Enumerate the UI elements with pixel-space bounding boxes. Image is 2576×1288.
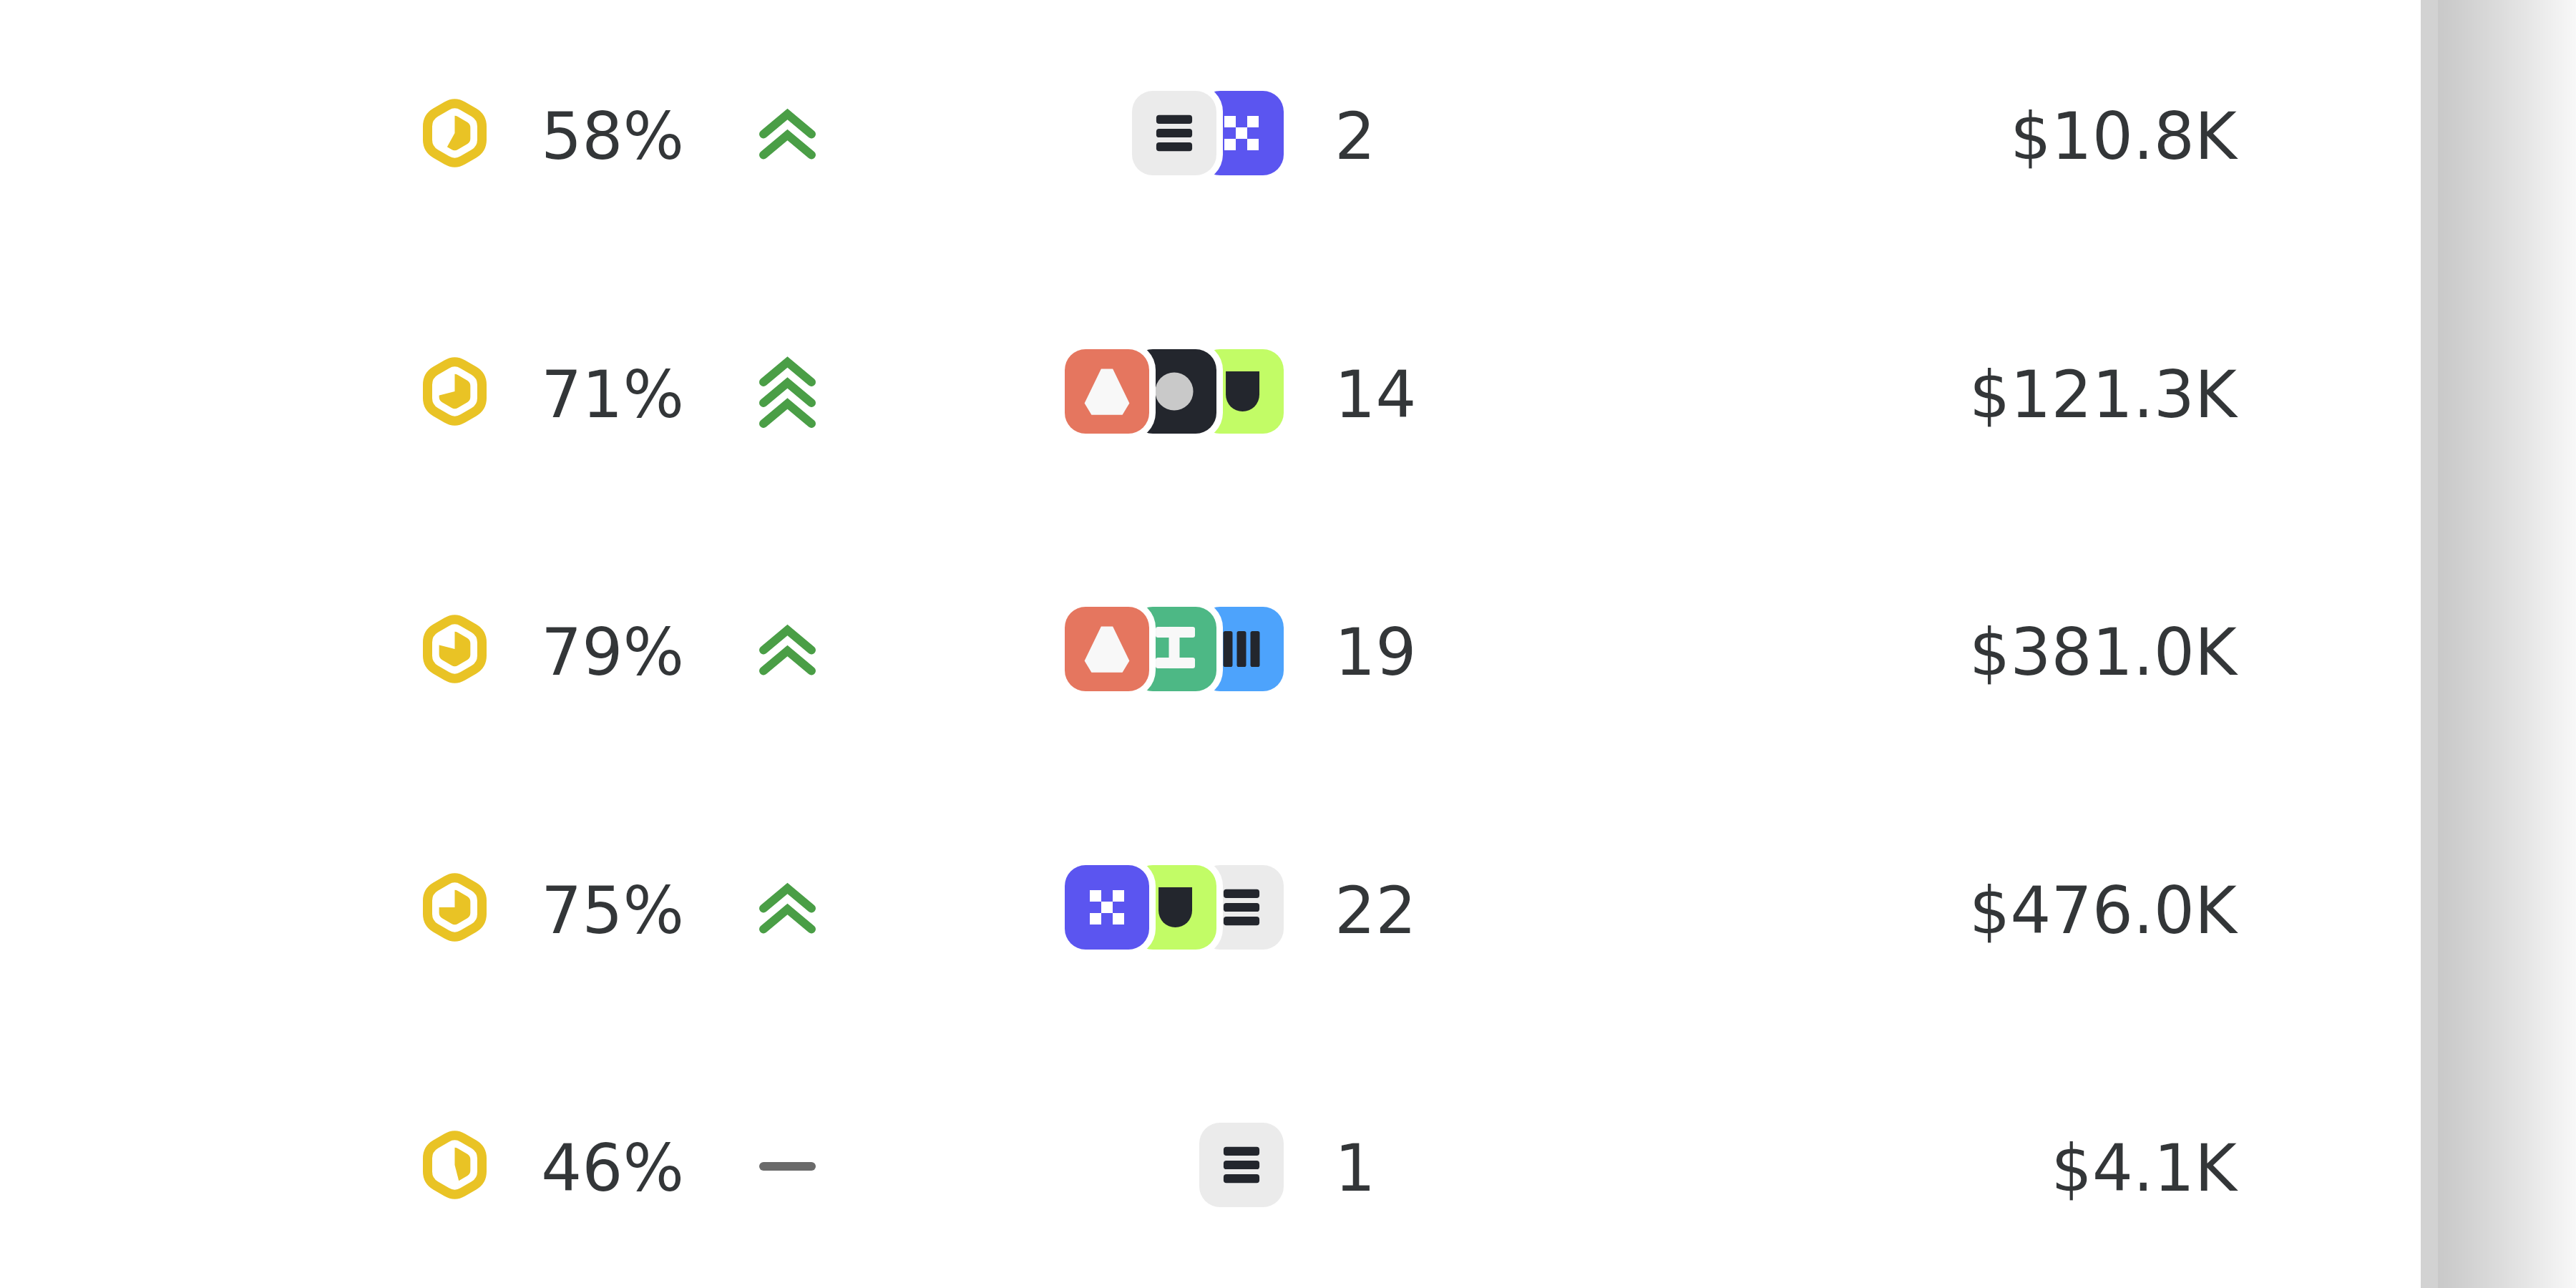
button[interactable]: Health 46 percent (0, 1036, 2576, 1288)
button[interactable]: Health 79 percent (0, 520, 2576, 778)
staticText: 79% (541, 615, 685, 690)
staticText: 71% (541, 357, 685, 432)
other: Trend (759, 1095, 816, 1238)
other: Health 79 percent (423, 613, 487, 686)
button[interactable]: Health 71 percent (0, 263, 2576, 520)
staticText: 22 (1335, 873, 1417, 948)
other: Health 58 percent (423, 97, 487, 170)
other: Health 71 percent (423, 355, 487, 428)
other: Trend (759, 837, 816, 980)
staticText: 19 (1335, 615, 1417, 690)
other: Trend (759, 579, 816, 722)
staticText: 75% (541, 873, 685, 948)
button[interactable]: Health 58 percent (0, 4, 2576, 262)
other: Products (1065, 349, 1284, 434)
staticText: 1 (1335, 1131, 1376, 1206)
other: Products (1065, 865, 1284, 950)
staticText: $381.0K (1717, 615, 2237, 690)
other: Trend (759, 321, 816, 464)
staticText: 58% (541, 99, 685, 174)
other: Products (1065, 607, 1284, 691)
staticText: $4.1K (1717, 1131, 2237, 1206)
staticText: 2 (1335, 99, 1376, 174)
staticText: $10.8K (1717, 99, 2237, 174)
staticText: $121.3K (1717, 357, 2237, 432)
staticText: $476.0K (1717, 873, 2237, 948)
button[interactable]: Health 75 percent (0, 779, 2576, 1036)
other: Health 46 percent (423, 1128, 487, 1201)
other: Health 75 percent (423, 871, 487, 944)
staticText: 46% (541, 1131, 685, 1206)
staticText: 14 (1335, 357, 1417, 432)
other: Trend (759, 63, 816, 206)
other: Products (1199, 1123, 1284, 1207)
other: Products (1132, 91, 1284, 175)
